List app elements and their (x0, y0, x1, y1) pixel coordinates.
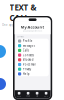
staticText: Messages (23, 44, 35, 47)
button[interactable]: Contacts (16, 53, 49, 57)
button[interactable]: More (42, 92, 51, 97)
staticText: Chats (26, 95, 30, 97)
staticText: Help (23, 72, 30, 76)
staticText: TEXT & CALL (9, 2, 36, 23)
button[interactable]: Home (15, 92, 24, 97)
staticText: Voicemail (23, 63, 36, 66)
button[interactable]: Messages (16, 43, 49, 48)
button[interactable]: Blocked (16, 57, 49, 62)
staticText: Calls (23, 49, 29, 52)
staticText: Privacy (23, 67, 31, 71)
button[interactable]: Help (16, 72, 49, 76)
staticText: SETTINGS (17, 36, 24, 38)
button[interactable]: Calls (16, 48, 49, 53)
staticText: One app for every conversation (2, 23, 44, 27)
staticText: Profile (23, 39, 33, 43)
staticText: My Account (21, 24, 45, 30)
button[interactable]: Voicemail (16, 62, 49, 67)
button[interactable]: Chats (24, 92, 33, 97)
staticText: More (44, 95, 48, 97)
staticText: Contacts (23, 53, 34, 57)
button[interactable]: Calls (33, 92, 42, 97)
button[interactable]: Privacy (16, 67, 49, 72)
staticText: Home (17, 95, 21, 97)
staticText: Blocked (23, 58, 34, 61)
staticText: Calls (36, 95, 39, 97)
staticText: Manage plan & preferences (23, 30, 43, 32)
button[interactable]: Profile (16, 39, 49, 43)
